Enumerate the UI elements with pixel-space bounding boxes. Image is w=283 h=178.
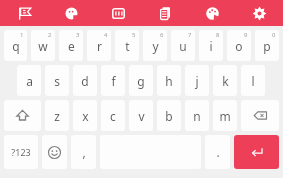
staticText: x <box>82 108 89 124</box>
button[interactable]: b <box>157 100 181 131</box>
button[interactable]: Backspace <box>241 100 279 131</box>
staticText: b <box>165 108 173 124</box>
button[interactable]: ?123 <box>4 135 38 169</box>
staticText: 8 <box>216 31 220 39</box>
staticText: m <box>219 108 231 124</box>
button[interactable]: m <box>213 100 237 131</box>
button[interactable]: t <box>115 30 139 61</box>
button[interactable]: c <box>101 100 125 131</box>
staticText: 6 <box>160 31 164 39</box>
staticText: 0 <box>272 31 276 39</box>
staticText: w <box>38 38 48 54</box>
staticText: 4 <box>104 31 108 39</box>
button[interactable]: a <box>17 65 41 96</box>
staticText: e <box>68 38 75 54</box>
button[interactable]: Language <box>0 0 48 26</box>
staticText: 9 <box>244 31 248 39</box>
staticText: h <box>165 73 173 89</box>
button[interactable]: Shift <box>4 100 41 131</box>
button[interactable]: o <box>227 30 251 61</box>
button[interactable]: Sticker <box>48 0 95 26</box>
staticText: g <box>137 73 145 89</box>
staticText: 7 <box>188 31 192 39</box>
button[interactable]: i <box>199 30 223 61</box>
staticText: o <box>235 38 243 54</box>
staticText: 5 <box>132 31 136 39</box>
button[interactable]: x <box>73 100 97 131</box>
button[interactable]: q <box>4 30 27 61</box>
button[interactable]: h <box>157 65 181 96</box>
staticText: l <box>251 73 255 89</box>
staticText: a <box>26 73 33 89</box>
button[interactable]: u <box>171 30 195 61</box>
staticText: j <box>195 73 199 89</box>
button[interactable]: Settings <box>236 0 283 26</box>
button[interactable]: r <box>87 30 111 61</box>
button[interactable]: e <box>59 30 83 61</box>
staticText: n <box>193 108 201 124</box>
button[interactable]: l <box>241 65 265 96</box>
button[interactable]: Clipboard <box>142 0 189 26</box>
staticText: v <box>138 108 145 124</box>
staticText: ?123 <box>11 146 31 158</box>
button[interactable]: w <box>31 30 55 61</box>
staticText: k <box>222 73 229 89</box>
staticText: 2 <box>48 31 52 39</box>
staticText: z <box>54 108 60 124</box>
staticText: 3 <box>76 31 80 39</box>
staticText: t <box>125 38 130 54</box>
button[interactable]: j <box>185 65 209 96</box>
button[interactable]: v <box>129 100 153 131</box>
staticText: i <box>209 38 213 54</box>
button[interactable]: k <box>213 65 237 96</box>
button[interactable]: g <box>129 65 153 96</box>
staticText: f <box>111 73 116 89</box>
button[interactable]: d <box>73 65 97 96</box>
staticText: s <box>54 73 60 89</box>
button[interactable]: . <box>205 135 230 169</box>
button[interactable]: GIF <box>95 0 142 26</box>
button[interactable]: f <box>101 65 125 96</box>
button[interactable]: z <box>45 100 69 131</box>
staticText: y <box>152 38 159 54</box>
staticText: p <box>263 38 271 54</box>
staticText: c <box>110 108 116 124</box>
button[interactable]: n <box>185 100 209 131</box>
staticText: , <box>82 144 86 160</box>
staticText: . <box>216 144 220 160</box>
button[interactable]: Emoji <box>42 135 67 169</box>
button[interactable]: p <box>255 30 279 61</box>
staticText: 1 <box>20 31 24 39</box>
staticText: r <box>97 38 102 54</box>
button[interactable]: Enter <box>234 135 279 169</box>
staticText: u <box>179 38 187 54</box>
staticText: q <box>12 38 20 54</box>
staticText: d <box>81 73 89 89</box>
button[interactable]: Theme <box>189 0 236 26</box>
button[interactable]: , <box>71 135 96 169</box>
button[interactable]: y <box>143 30 167 61</box>
button[interactable]: s <box>45 65 69 96</box>
